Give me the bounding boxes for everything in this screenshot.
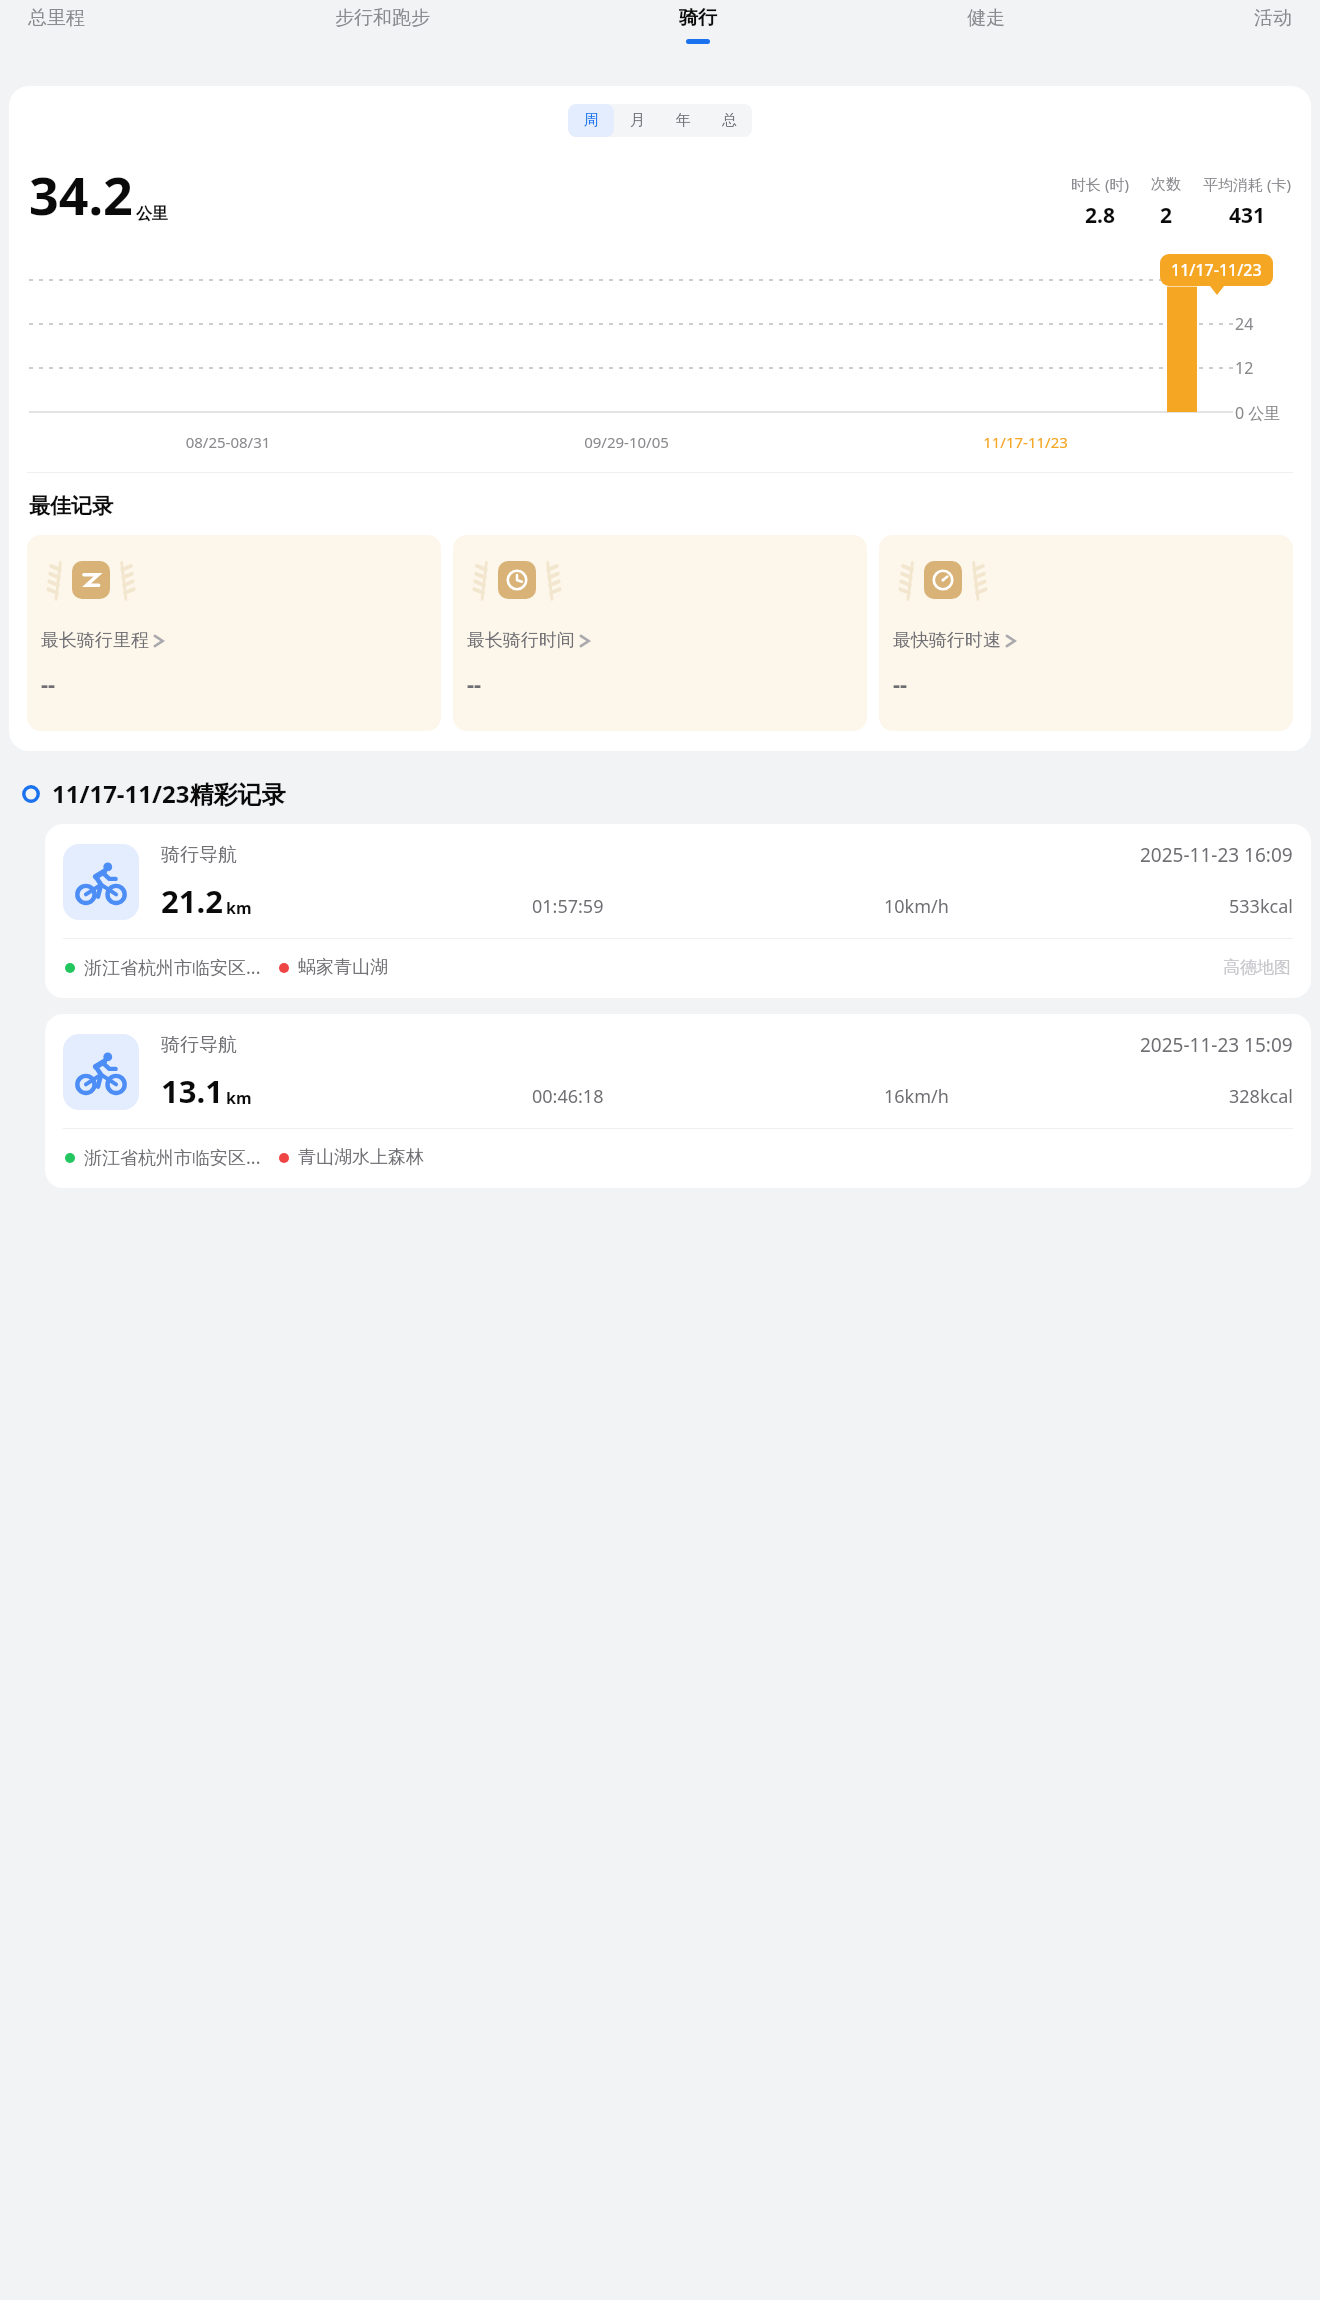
staticText: 24 — [1235, 313, 1254, 335]
staticText: 13.1 — [161, 1070, 223, 1112]
staticText: 时长 (时) — [1071, 174, 1129, 194]
staticText: 09/29-10/05 — [427, 432, 826, 452]
staticText: 431 — [1229, 201, 1266, 230]
staticText: 骑行导航 — [161, 1033, 237, 1057]
staticText: 2025-11-23 15:09 — [1140, 1032, 1293, 1058]
staticText: 08/25-08/31 — [29, 432, 427, 452]
button[interactable]: 最长骑行里程 — [27, 535, 441, 731]
staticText: 12 — [1235, 357, 1254, 379]
staticText: 公里 — [136, 204, 168, 224]
staticText: 16km/h — [884, 1084, 949, 1109]
button[interactable]: 总 — [706, 104, 752, 137]
staticText: -- — [41, 668, 56, 698]
staticText: 10km/h — [884, 894, 949, 919]
button[interactable]: 骑行导航 — [45, 1014, 1311, 1188]
staticText: 36 — [1235, 268, 1254, 290]
staticText: 总里程 — [28, 6, 85, 30]
staticText: 总 — [722, 111, 737, 130]
staticText: 533kcal — [1229, 894, 1293, 919]
button[interactable]: 年 — [660, 104, 706, 137]
staticText: 11/17-11/23 — [1171, 259, 1262, 281]
staticText: 01:57:59 — [532, 894, 604, 919]
staticText: 最长骑行时间 — [467, 629, 575, 652]
button[interactable]: 总里程 — [18, 0, 95, 50]
staticText: 浙江省杭州市临安区... — [84, 955, 261, 980]
button[interactable]: 最快骑行时速 — [879, 535, 1293, 731]
button[interactable]: 步行和跑步 — [325, 0, 440, 50]
button[interactable]: 活动 — [1244, 0, 1302, 50]
staticText: km — [226, 897, 252, 919]
button[interactable]: 骑行 — [669, 0, 727, 50]
staticText: 11/17-11/23 — [826, 432, 1225, 452]
staticText: 年 — [676, 111, 691, 130]
staticText: 2025-11-23 16:09 — [1140, 842, 1293, 868]
staticText: 青山湖水上森林 — [298, 1146, 424, 1169]
staticText: 最快骑行时速 — [893, 629, 1001, 652]
button[interactable]: 健走 — [957, 0, 1015, 50]
button[interactable]: 骑行导航 — [45, 824, 1311, 998]
staticText: 骑行 — [679, 6, 717, 30]
staticText: 34.2 — [29, 159, 133, 230]
staticText: 2 — [1160, 201, 1173, 230]
staticText: -- — [467, 668, 482, 698]
staticText: 活动 — [1254, 6, 1292, 30]
staticText: 21.2 — [161, 880, 223, 922]
button[interactable]: 月 — [614, 104, 660, 137]
staticText: 骑行导航 — [161, 843, 237, 867]
staticText: -- — [893, 668, 908, 698]
staticText: 周 — [584, 111, 599, 130]
staticText: 平均消耗 (卡) — [1203, 174, 1291, 194]
button[interactable]: 周 — [568, 104, 614, 137]
staticText: 月 — [630, 111, 645, 130]
staticText: 0 公里 — [1235, 402, 1281, 424]
staticText: 最长骑行里程 — [41, 629, 149, 652]
staticText: 328kcal — [1229, 1084, 1293, 1109]
staticText: km — [226, 1087, 252, 1109]
staticText: 高德地图 — [1223, 957, 1291, 978]
staticText: 2.8 — [1085, 201, 1115, 230]
staticText: 11/17-11/23精彩记录 — [52, 777, 286, 810]
staticText: 步行和跑步 — [335, 6, 430, 30]
staticText: 最佳记录 — [29, 493, 113, 519]
staticText: 浙江省杭州市临安区... — [84, 1145, 261, 1170]
staticText: 00:46:18 — [532, 1084, 604, 1109]
staticText: 健走 — [967, 6, 1005, 30]
staticText: 蜗家青山湖 — [298, 956, 388, 979]
button[interactable]: 最长骑行时间 — [453, 535, 867, 731]
staticText: 次数 — [1151, 175, 1181, 194]
